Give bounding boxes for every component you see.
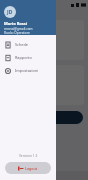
button[interactable]: Impostazioni: [0, 64, 56, 77]
button[interactable]: Schede: [0, 38, 56, 51]
staticText: Mario Rossi: [4, 21, 28, 26]
staticText: Schede: [15, 42, 28, 47]
button[interactable]: Rapporto: [0, 51, 56, 64]
staticText: Ruolo: Operatore: [4, 31, 30, 35]
button[interactable]: 1: [4, 65, 84, 105]
staticText: Versione 1.3: [19, 154, 38, 158]
button[interactable]: 0: [4, 20, 84, 60]
staticText: JD: [7, 9, 13, 16]
staticText: mrossi@gmail.com: [4, 27, 33, 31]
staticText: Impostazioni: [15, 68, 39, 73]
button[interactable]: Azione: [41, 111, 83, 124]
staticText: Logout: [25, 166, 38, 171]
button[interactable]: Logout: [5, 162, 51, 174]
staticText: Rapporto: [15, 55, 32, 60]
